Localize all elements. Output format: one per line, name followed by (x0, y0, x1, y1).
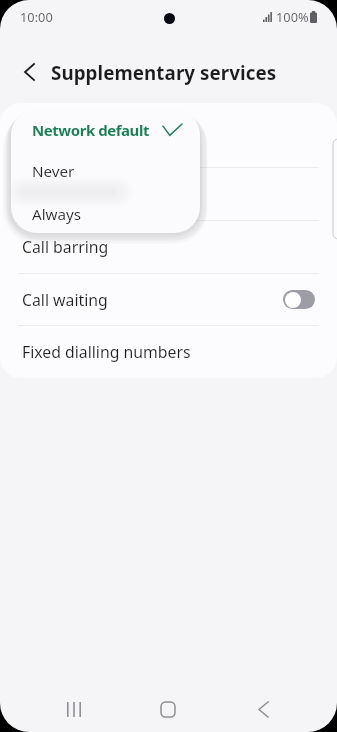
button[interactable]: Recent apps (54, 689, 94, 729)
button[interactable]: Back (9, 52, 49, 92)
button[interactable]: Home (148, 689, 188, 729)
button[interactable]: Caller ID (0, 115, 337, 167)
button[interactable]: Call barring (0, 221, 337, 273)
button[interactable]: Call forwarding (0, 168, 337, 220)
button[interactable]: Never (11, 150, 200, 192)
staticText: Caller ID (22, 130, 86, 152)
button[interactable]: Network default (11, 109, 200, 150)
button[interactable]: Always (11, 192, 200, 233)
staticText: 100% (276, 8, 309, 25)
staticText: Network default (32, 120, 149, 140)
staticText: Fixed dialling numbers (22, 341, 191, 363)
staticText: Call barring (22, 236, 109, 258)
button[interactable]: Call waiting (0, 274, 337, 325)
staticText: Always (32, 204, 82, 225)
staticText: Call waiting (22, 289, 108, 311)
button[interactable]: Back (243, 689, 283, 729)
button[interactable]: Fixed dialling numbers (0, 326, 337, 378)
staticText: Never (32, 161, 75, 182)
staticText: Call forwarding (22, 183, 136, 205)
staticText: Supplementary services (51, 60, 277, 86)
staticText: 10:00 (20, 8, 53, 25)
